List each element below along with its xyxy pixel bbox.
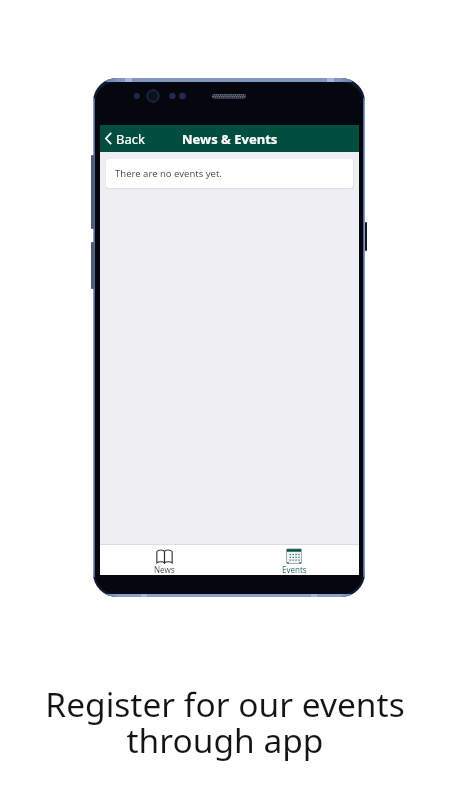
staticText: News [154, 564, 175, 575]
staticText: Back [116, 130, 145, 147]
button[interactable]: News [100, 544, 229, 575]
staticText: Events [282, 564, 307, 575]
button[interactable]: Events [229, 544, 359, 575]
staticText: News & Events [182, 130, 278, 148]
button[interactable]: Back [100, 125, 153, 152]
staticText: There are no events yet. [115, 167, 222, 180]
other: News [156, 548, 173, 564]
staticText: Register for our events through app [10, 681, 440, 763]
button[interactable]: There are no events yet. [106, 159, 353, 188]
other: Events [286, 548, 302, 564]
